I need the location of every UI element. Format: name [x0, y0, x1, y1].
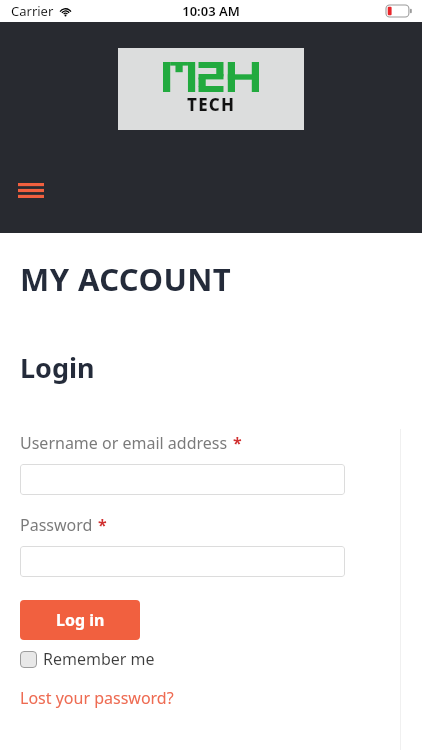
- button[interactable]: M2H Tech home: [118, 48, 304, 130]
- button[interactable]: Open menu: [8, 170, 54, 210]
- staticText: MY ACCOUNT: [20, 258, 232, 300]
- staticText: TECH: [187, 93, 236, 116]
- staticText: Username or email address: [20, 432, 228, 454]
- staticText: *: [98, 514, 107, 536]
- staticText: Login: [20, 349, 95, 386]
- staticText: Remember me: [43, 648, 155, 670]
- button[interactable]: Text input field: [20, 464, 345, 495]
- button[interactable]: Lost your password?: [20, 687, 174, 709]
- button[interactable]: Remember me: [20, 648, 155, 670]
- staticText: Lost your password?: [20, 687, 174, 709]
- staticText: Carrier: [11, 2, 54, 20]
- button[interactable]: Log in: [20, 600, 140, 640]
- staticText: Password: [20, 514, 93, 536]
- button[interactable]: Text input field: [20, 546, 345, 577]
- staticText: *: [233, 432, 242, 454]
- staticText: Log in: [56, 609, 105, 631]
- staticText: 10:03 AM: [182, 2, 240, 20]
